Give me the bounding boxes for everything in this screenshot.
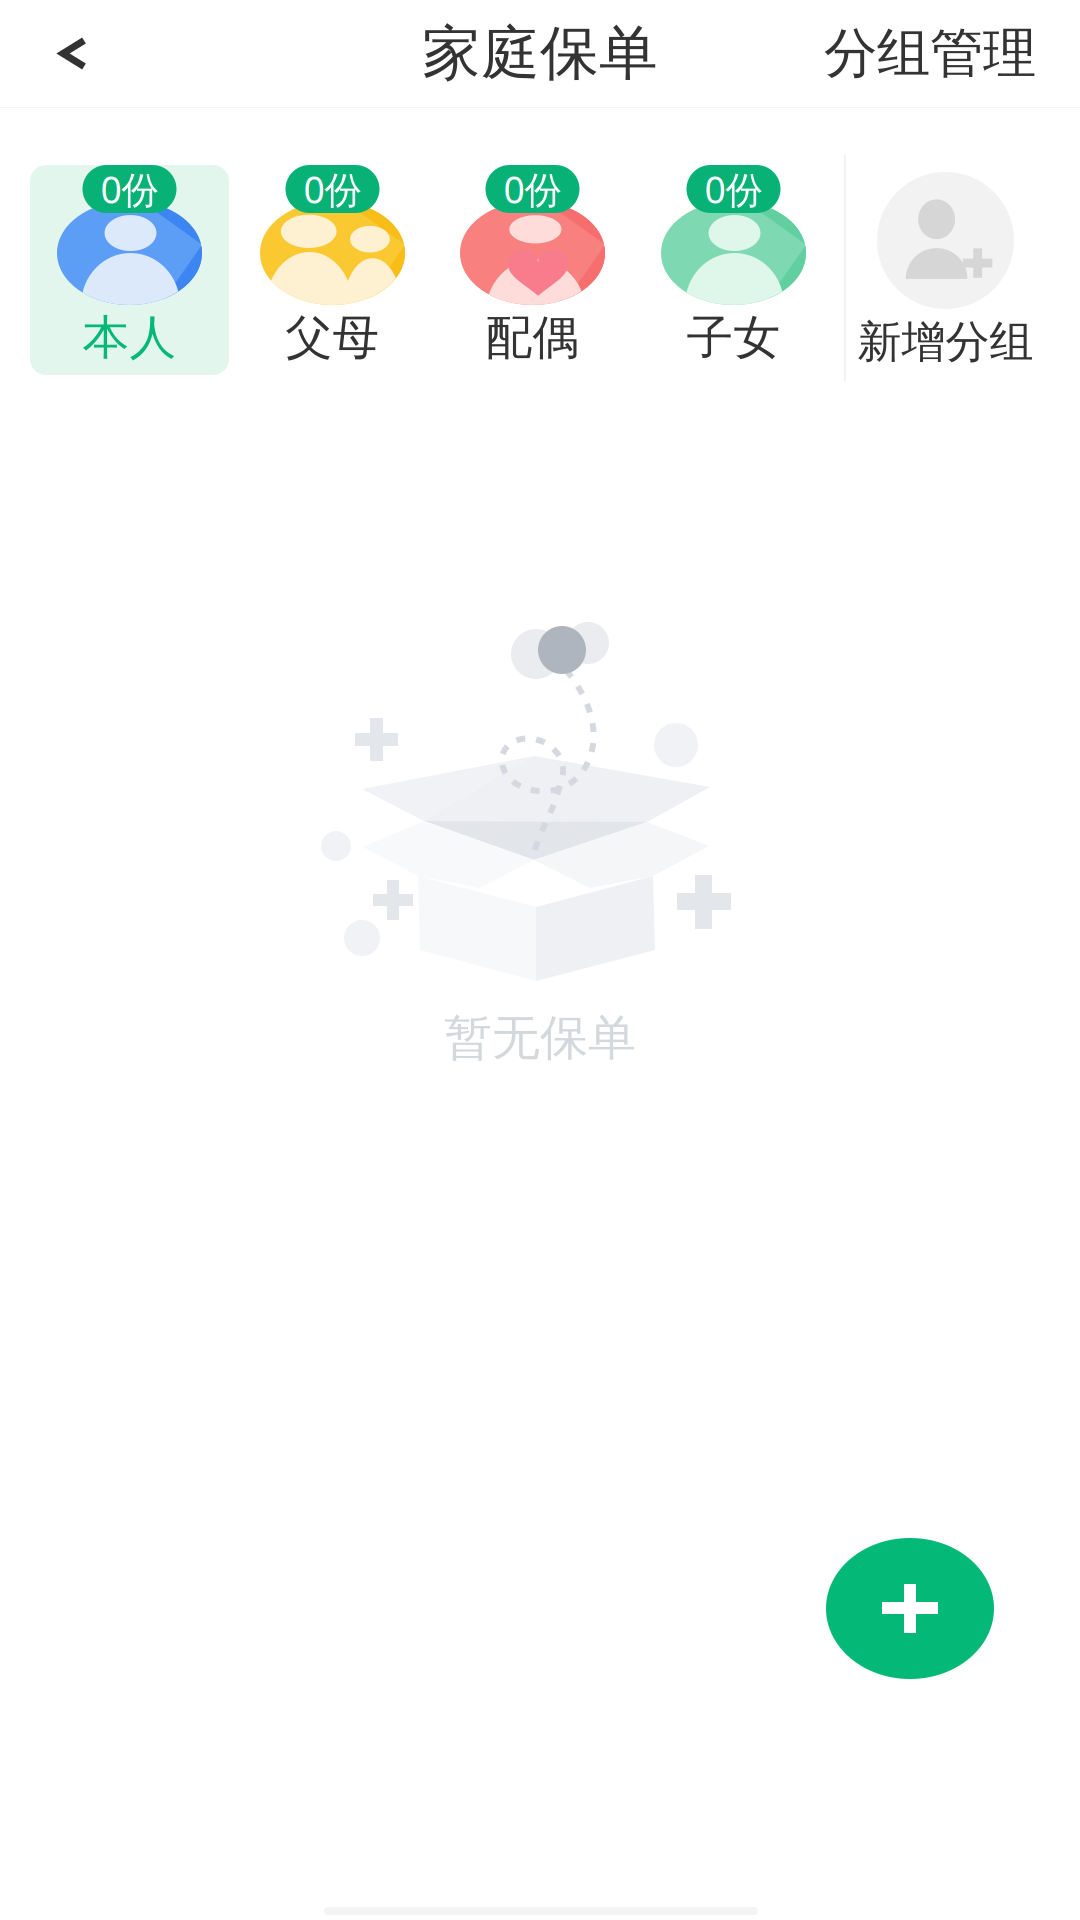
staticText: 本人 xyxy=(82,309,176,366)
staticText: 0份 xyxy=(303,164,361,214)
staticText: 新增分组 xyxy=(857,315,1033,369)
button[interactable]: 新增保单 xyxy=(826,1538,994,1679)
button[interactable]: 0份 xyxy=(233,165,432,375)
button[interactable]: 返回 xyxy=(0,5,128,101)
staticText: 暂无保单 xyxy=(444,1008,636,1067)
staticText: 子女 xyxy=(686,309,780,366)
staticText: 0份 xyxy=(704,164,762,214)
button[interactable]: 0份 xyxy=(634,165,833,375)
staticText: 父母 xyxy=(285,309,379,366)
button[interactable]: 0份 xyxy=(30,165,229,375)
button[interactable]: 新增分组 xyxy=(846,165,1045,375)
staticText: 家庭保单 xyxy=(422,17,658,90)
staticText: 配偶 xyxy=(485,309,579,366)
staticText: 分组管理 xyxy=(824,21,1036,86)
button[interactable]: 0份 xyxy=(433,165,632,375)
staticText: 0份 xyxy=(503,164,561,214)
button[interactable]: 分组管理 xyxy=(784,0,1080,110)
staticText: 0份 xyxy=(100,164,158,214)
